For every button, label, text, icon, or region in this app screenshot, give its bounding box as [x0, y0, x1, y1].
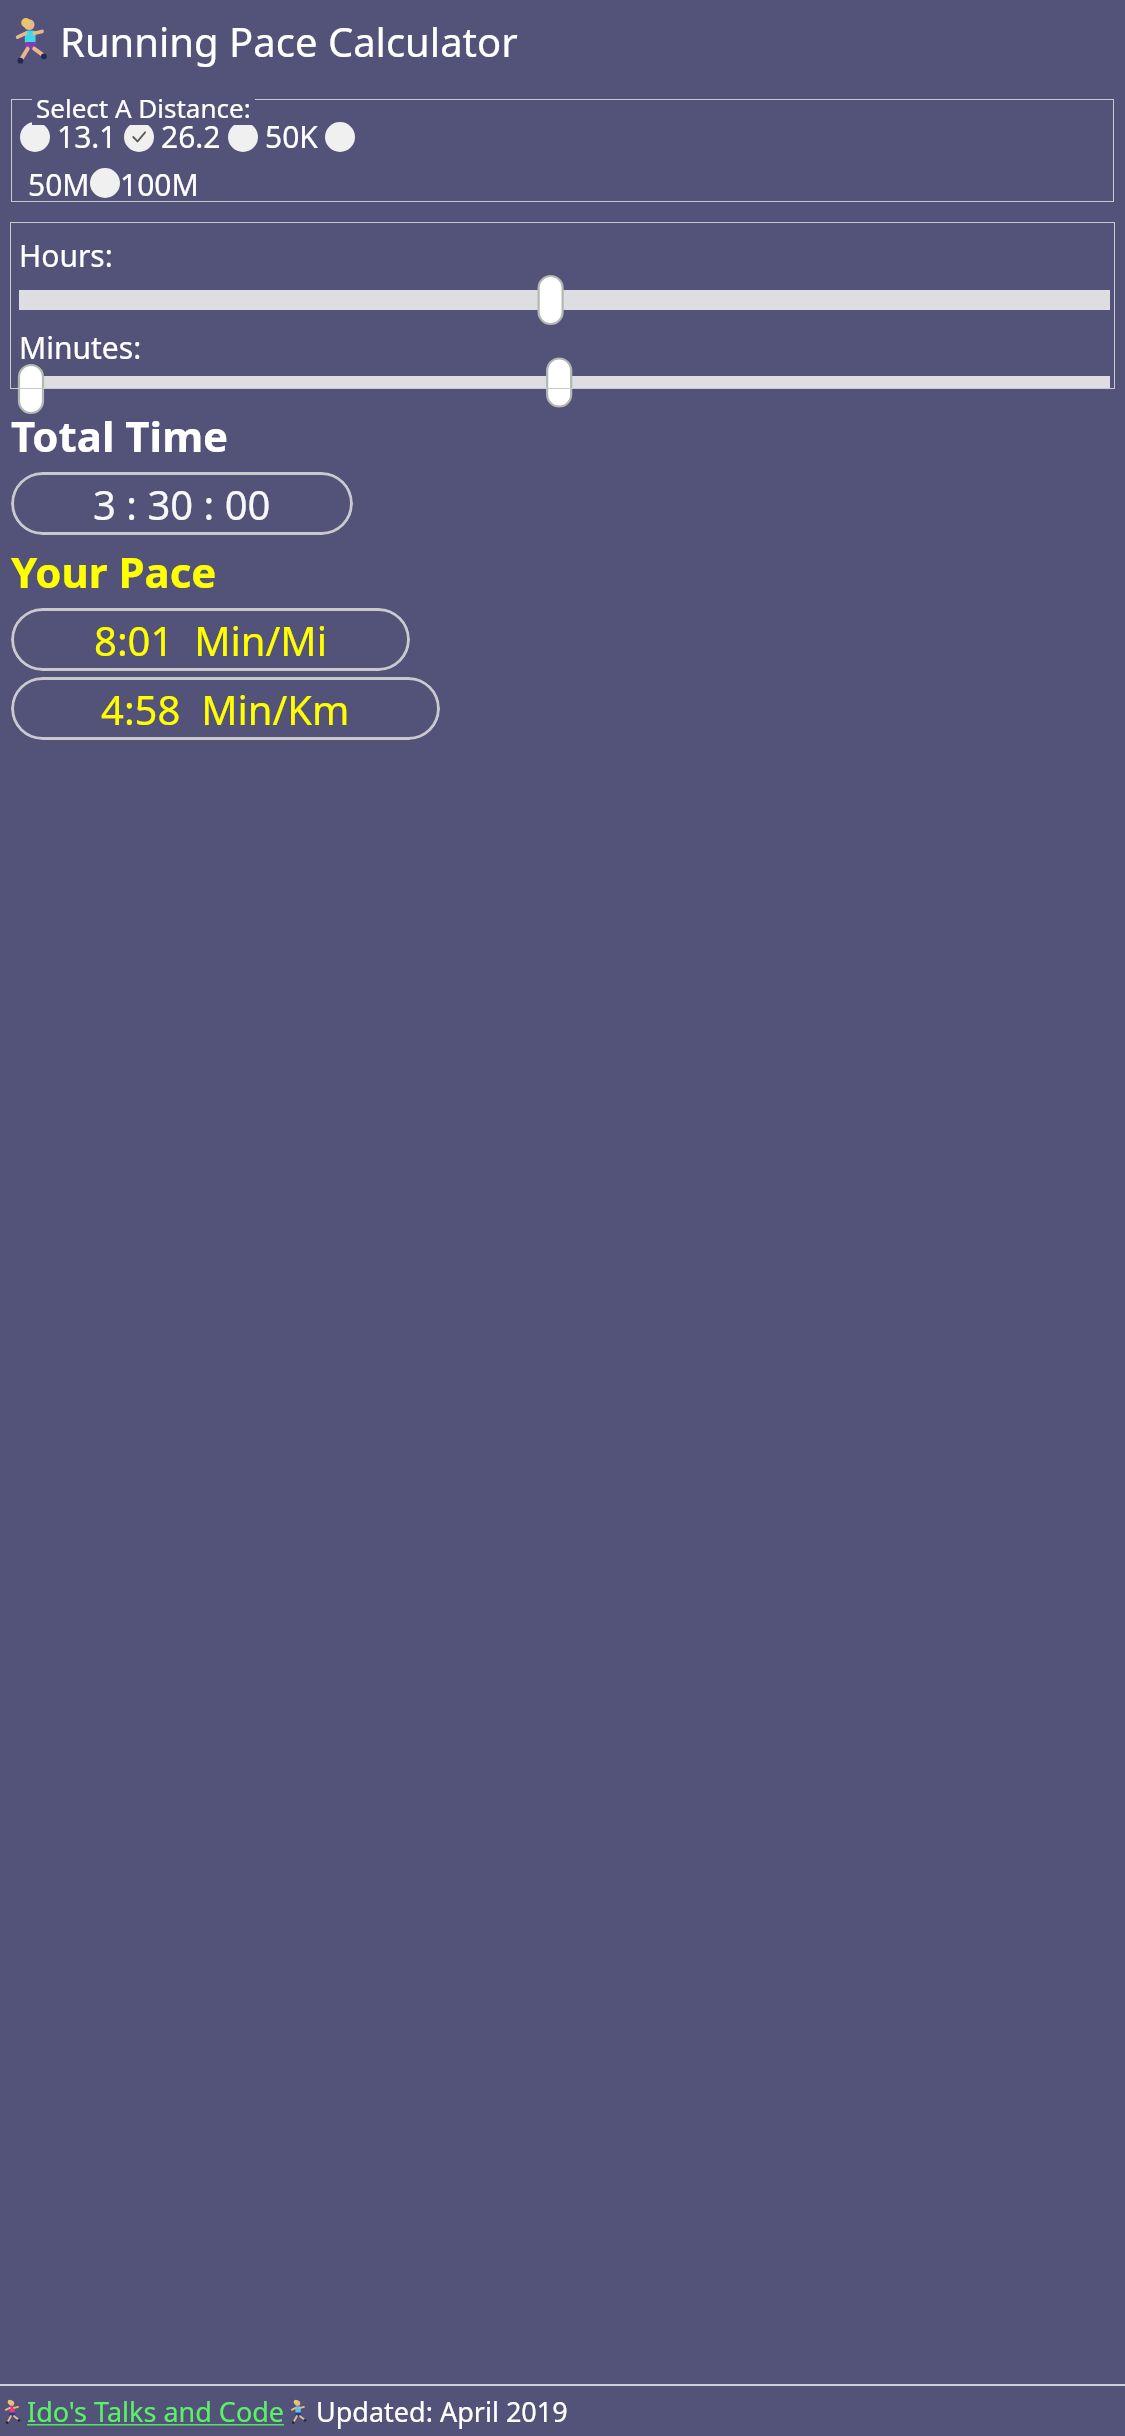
staticText: 3 : 30 : 00 — [93, 477, 271, 531]
button[interactable]: 4:58 Min/Km — [11, 677, 440, 740]
staticText: 50M — [28, 164, 90, 202]
staticText: 26.2 — [161, 116, 221, 157]
button[interactable]: Selected distance — [124, 122, 154, 152]
staticText: Your Pace — [11, 543, 217, 600]
staticText: 50K — [265, 116, 318, 157]
button[interactable]: Ido's Talks and Code — [27, 2393, 285, 2430]
staticText: Select A Distance: — [36, 90, 251, 125]
button[interactable]: Distance — [325, 122, 355, 152]
button[interactable]: 8:01 Min/Mi — [11, 608, 410, 671]
staticText: 8:01 Min/Mi — [94, 613, 327, 667]
staticText: 100M — [120, 164, 199, 202]
staticText: Updated: April 2019 — [316, 2393, 568, 2430]
staticText: 13.1 — [57, 116, 117, 157]
button[interactable]: Distance — [20, 122, 50, 152]
staticText: Minutes: — [19, 327, 142, 368]
staticText: 4:58 Min/Km — [101, 682, 350, 736]
button[interactable]: 3 : 30 : 00 — [11, 472, 353, 535]
staticText: Ido's Talks and Code — [27, 2393, 285, 2430]
staticText: Hours: — [19, 235, 113, 276]
staticText: Total Time — [11, 407, 229, 464]
button[interactable]: Minutes: — [19, 376, 1110, 389]
staticText: Running Pace Calculator — [60, 14, 518, 68]
button[interactable]: Distance — [90, 168, 120, 198]
button[interactable]: Distance — [228, 122, 258, 152]
button[interactable]: Hours: — [19, 284, 1110, 316]
